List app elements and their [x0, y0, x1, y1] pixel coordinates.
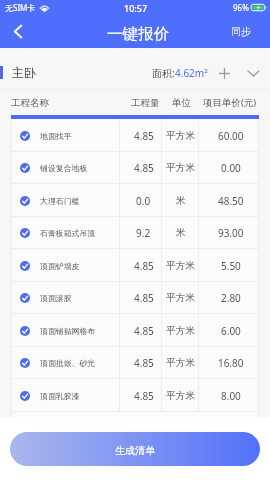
button[interactable]: Collapse section — [243, 63, 263, 83]
button[interactable]: 铺设复合地板 — [11, 152, 119, 184]
button[interactable]: 地面找平 — [11, 119, 119, 152]
staticText: 4.85 — [134, 356, 154, 370]
button[interactable]: 大理石门槛 — [11, 184, 119, 217]
staticText: 平方米 — [166, 292, 196, 304]
staticText: 平方米 — [166, 260, 196, 272]
button[interactable]: 顶面铲墙皮 — [11, 249, 119, 282]
staticText: 60.00 — [218, 129, 244, 143]
staticText: 平方米 — [166, 130, 196, 142]
staticText: 面积: — [152, 66, 175, 80]
staticText: 6.00 — [221, 324, 241, 338]
staticText: 93.00 — [218, 226, 244, 240]
button[interactable]: 顶面滚胶 — [11, 282, 119, 314]
staticText: 工程名称 — [11, 97, 49, 109]
staticText: 平方米 — [166, 357, 196, 369]
staticText: 顶面乳胶漆 — [40, 391, 80, 401]
staticText: 4.85 — [134, 129, 154, 143]
button[interactable]: 顶面铺贴网格布 — [11, 314, 119, 347]
staticText: 单位 — [172, 97, 191, 109]
button[interactable]: 生成清单 — [10, 432, 260, 466]
button[interactable]: 同步 — [231, 25, 251, 38]
staticText: 顶面铲墙皮 — [40, 261, 80, 271]
staticText: 4.85 — [134, 161, 154, 175]
staticText: 工程量 — [131, 97, 160, 109]
staticText: 同步 — [231, 25, 251, 38]
staticText: 一键报价 — [107, 24, 169, 44]
button[interactable]: 顶面乳胶漆 — [11, 379, 119, 412]
staticText: 项目单价(元) — [203, 96, 257, 109]
staticText: 96% — [233, 2, 249, 13]
button[interactable]: Add item — [214, 63, 234, 83]
staticText: 0.00 — [221, 161, 241, 175]
staticText: 8.00 — [221, 389, 241, 403]
staticText: 10:57 — [124, 2, 148, 14]
button[interactable]: 顶面批嵌、砂光 — [11, 347, 119, 379]
staticText: 石膏板箱式吊顶 — [40, 228, 96, 238]
staticText: 平方米 — [166, 325, 196, 337]
staticText: 平方米 — [166, 390, 196, 402]
staticText: 铺设复合地板 — [40, 163, 88, 173]
staticText: 2.80 — [221, 291, 241, 305]
staticText: 48.50 — [218, 194, 244, 208]
button[interactable]: 石膏板箱式吊顶 — [11, 217, 119, 249]
staticText: 4.62m² — [175, 66, 208, 80]
staticText: 顶面铺贴网格布 — [40, 326, 96, 336]
staticText: 0.0 — [136, 194, 151, 208]
staticText: 地面找平 — [40, 131, 72, 141]
staticText: 大理石门槛 — [40, 196, 80, 206]
staticText: 9.2 — [136, 226, 151, 240]
staticText: 无SIM卡 — [5, 2, 36, 13]
staticText: 4.85 — [134, 259, 154, 273]
staticText: 主卧 — [12, 65, 36, 80]
staticText: 16.80 — [218, 356, 244, 370]
staticText: 平方米 — [166, 162, 196, 174]
staticText: 生成清单 — [115, 444, 155, 457]
staticText: 4.85 — [134, 389, 154, 403]
staticText: 米 — [176, 227, 186, 239]
staticText: 4.85 — [134, 291, 154, 305]
staticText: 5.50 — [221, 259, 241, 273]
staticText: 顶面滚胶 — [40, 293, 72, 303]
staticText: 顶面批嵌、砂光 — [40, 358, 96, 368]
staticText: 米 — [176, 195, 186, 207]
button[interactable]: Back — [0, 15, 36, 48]
staticText: 4.85 — [134, 324, 154, 338]
